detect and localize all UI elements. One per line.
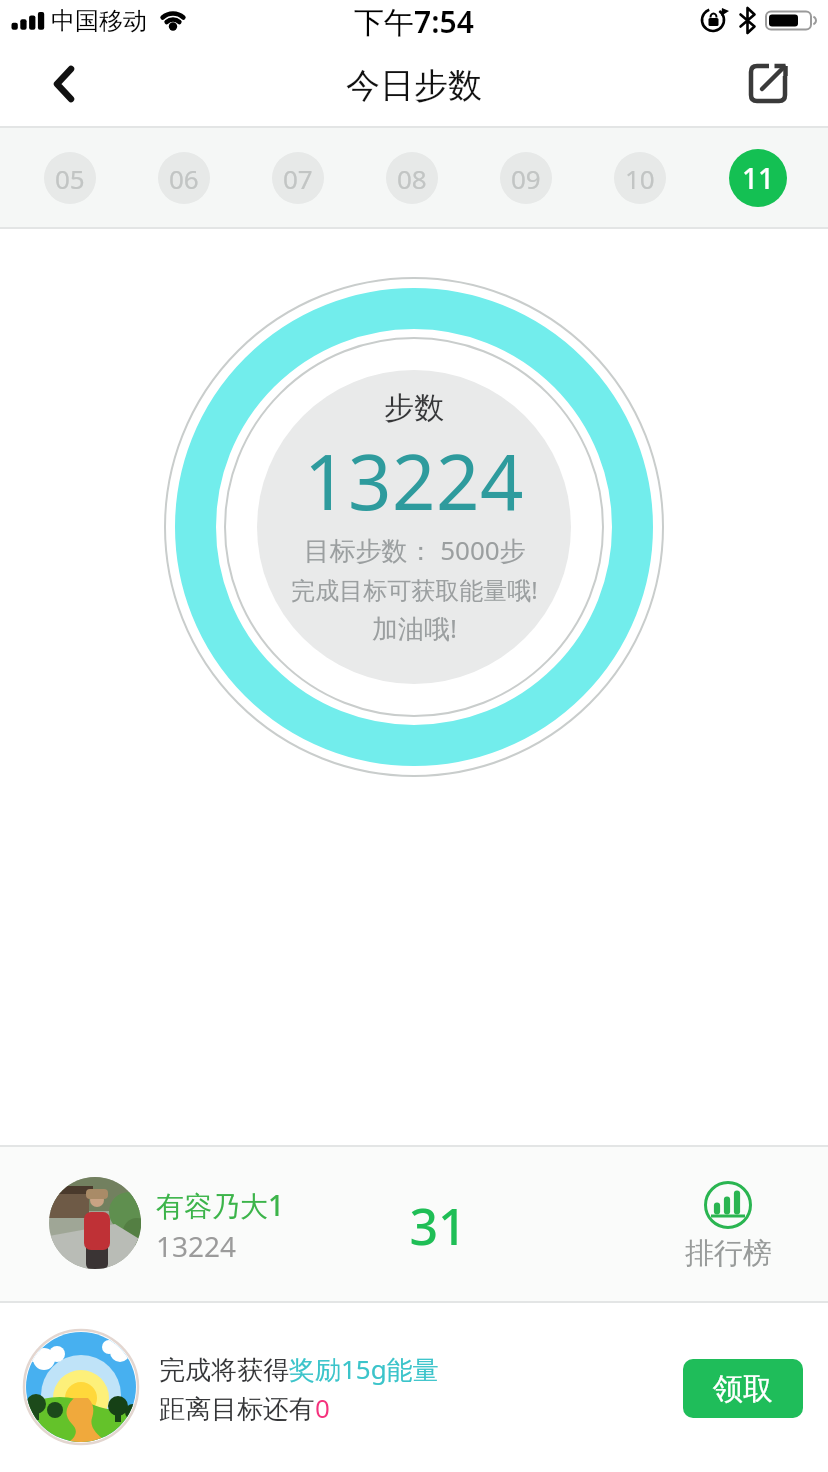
staticText: 完成目标可获取能量哦! (291, 573, 538, 606)
button[interactable] (736, 52, 802, 118)
button[interactable]: 08 (386, 152, 438, 204)
staticText: 距离目标还有0 (159, 1390, 330, 1426)
button[interactable] (690, 1172, 770, 1272)
staticText: 13224 (156, 1227, 237, 1265)
button[interactable]: 领取 (683, 1359, 803, 1418)
staticText: 13224 (304, 429, 524, 533)
staticText: 07 (283, 161, 313, 196)
staticText: 今日步数 (346, 64, 482, 107)
button[interactable]: 05 (44, 152, 96, 204)
button[interactable]: 06 (158, 152, 210, 204)
staticText: 完成将获得奖励15g能量 (159, 1351, 439, 1387)
button[interactable] (24, 1330, 138, 1444)
staticText: 09 (511, 161, 541, 196)
staticText: 步数 (384, 389, 444, 427)
button[interactable]: 11 (729, 149, 787, 207)
staticText: 11 (742, 159, 775, 197)
staticText: 排行榜 (685, 1235, 772, 1272)
staticText: 中国移动 (51, 6, 147, 36)
button[interactable]: 09 (500, 152, 552, 204)
button[interactable]: 07 (272, 152, 324, 204)
button[interactable] (48, 1176, 140, 1268)
staticText: 06 (169, 161, 199, 196)
staticText: 05 (55, 161, 85, 196)
staticText: 08 (397, 161, 427, 196)
staticText: 领取 (713, 1370, 773, 1408)
staticText: 10 (625, 161, 655, 196)
staticText: 加油哦! (372, 610, 457, 646)
button[interactable] (36, 56, 96, 116)
button[interactable]: 10 (614, 152, 666, 204)
staticText: 下午7:54 (354, 1, 474, 42)
staticText: 有容乃大1 (156, 1186, 285, 1224)
staticText: 31 (409, 1192, 467, 1260)
staticText: 目标步数： 5000步 (303, 532, 526, 568)
